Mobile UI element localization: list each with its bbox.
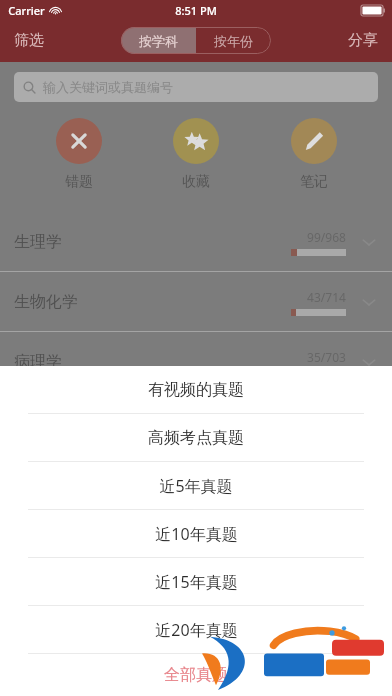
button[interactable]: 错题 [40, 118, 118, 191]
staticText: 输入关键词或真题编号 [43, 79, 173, 95]
staticText: 生理学 [14, 232, 62, 252]
button[interactable]: 按年份 [196, 27, 271, 54]
other: 展开 [360, 353, 378, 371]
staticText: 按学科 [139, 33, 178, 49]
staticText: 35/703 [307, 349, 346, 365]
button[interactable]: 近15年真题 [0, 558, 392, 605]
staticText: 有视频的真题 [148, 380, 244, 400]
staticText: 收藏 [182, 173, 210, 191]
button[interactable]: 近10年真题 [0, 510, 392, 557]
staticText: Carrier [8, 3, 45, 18]
button[interactable]: 全部真题 [0, 654, 392, 696]
staticText: 99/968 [307, 229, 346, 245]
staticText: 近15年真题 [155, 571, 238, 593]
staticText: 生物化学 [14, 292, 78, 312]
button[interactable]: 生物化学 [0, 272, 392, 332]
button[interactable]: 笔记 [275, 118, 353, 191]
other: 错题 [68, 130, 90, 152]
staticText: 病理学 [14, 352, 62, 372]
other: 收藏 [183, 128, 209, 154]
button[interactable]: 筛选 [0, 25, 58, 56]
staticText: 分享 [348, 31, 378, 50]
button[interactable]: 生理学 [0, 212, 392, 272]
button[interactable]: 有视频的真题 [0, 366, 392, 413]
button[interactable]: 分享 [334, 25, 392, 56]
button[interactable]: 高频考点真题 [0, 414, 392, 461]
button[interactable]: 按学科 [121, 27, 196, 54]
staticText: 全部真题 [164, 665, 228, 685]
button[interactable]: 输入关键词或真题编号 [14, 72, 378, 102]
button[interactable]: 近20年真题 [0, 606, 392, 653]
button[interactable]: 病理学 [0, 332, 392, 392]
staticText: 错题 [65, 173, 93, 191]
button[interactable]: 收藏 [157, 118, 235, 191]
staticText: 筛选 [14, 31, 44, 50]
staticText: 近10年真题 [155, 523, 238, 545]
staticText: 高频考点真题 [148, 428, 244, 448]
staticText: 近5年真题 [159, 475, 233, 497]
staticText: 笔记 [300, 173, 328, 191]
staticText: 近20年真题 [155, 619, 238, 641]
staticText: 按年份 [214, 33, 253, 49]
staticText: 43/714 [307, 289, 346, 305]
other: 笔记 [302, 129, 326, 153]
staticText: 8:51 PM [175, 3, 217, 18]
button[interactable]: 近5年真题 [0, 462, 392, 509]
